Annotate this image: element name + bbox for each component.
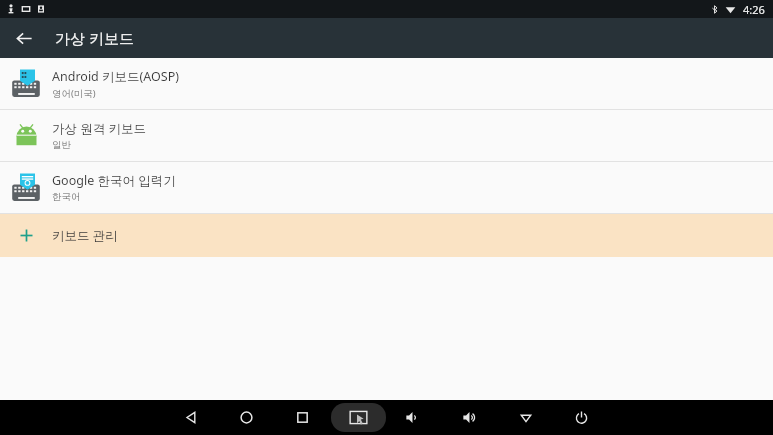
staticText: 키보드 관리	[52, 227, 118, 244]
button[interactable]: Hide navigation bar	[508, 400, 544, 435]
button[interactable]: Google 한국어 입력기	[0, 162, 773, 213]
button[interactable]: Back	[173, 400, 209, 435]
button[interactable]: Android 키보드(AOSP)	[0, 58, 773, 109]
button[interactable]: Volume up	[452, 400, 488, 435]
staticText: 4:26	[743, 2, 765, 17]
staticText: 가상 원격 키보드	[52, 120, 147, 137]
button[interactable]: Power	[563, 400, 599, 435]
staticText: Google 한국어 입력기	[52, 172, 176, 189]
button[interactable]: Back	[9, 23, 39, 53]
staticText: Android 키보드(AOSP)	[52, 68, 179, 85]
button[interactable]: Volume down	[395, 400, 431, 435]
staticText: 일반	[52, 139, 71, 151]
staticText: 가상 키보드	[55, 28, 134, 48]
staticText: 한국어	[52, 191, 81, 203]
button[interactable]: 가상 원격 키보드	[0, 110, 773, 161]
staticText: 영어(미국)	[52, 87, 96, 100]
button[interactable]: Recent apps	[284, 400, 320, 435]
button[interactable]: 키보드 관리	[0, 214, 773, 257]
button[interactable]: Screenshot	[331, 403, 386, 432]
button[interactable]: Home	[228, 400, 264, 435]
